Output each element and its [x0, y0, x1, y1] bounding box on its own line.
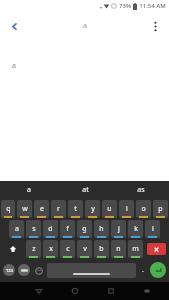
button[interactable]: t: [68, 200, 83, 218]
staticText: 73%: [119, 2, 131, 10]
button[interactable]: l: [145, 220, 160, 238]
staticText: c: [66, 244, 70, 254]
button[interactable]: h: [94, 220, 109, 238]
staticText: a: [15, 224, 19, 234]
staticText: g: [82, 224, 87, 234]
staticText: w: [22, 204, 28, 214]
button[interactable]: n: [111, 240, 126, 258]
staticText: s: [32, 224, 36, 234]
button[interactable]: g: [77, 220, 92, 238]
staticText: z: [32, 244, 36, 254]
button[interactable]: Home: [57, 282, 93, 300]
button[interactable]: Switch keyboard: [129, 282, 165, 300]
button[interactable]: d: [43, 220, 58, 238]
staticText: b: [99, 244, 104, 254]
button[interactable]: o: [136, 200, 151, 218]
button[interactable]: f: [60, 220, 75, 238]
staticText: at: [82, 185, 89, 195]
button[interactable]: Delete: [147, 243, 166, 255]
button[interactable]: e: [34, 200, 49, 218]
staticText: as: [137, 185, 145, 195]
button[interactable]: m: [128, 240, 143, 258]
button[interactable]: i: [119, 200, 134, 218]
staticText: t: [74, 204, 77, 214]
staticText: n: [116, 244, 121, 254]
button[interactable]: r: [51, 200, 66, 218]
button[interactable]: Voice input: [18, 264, 30, 276]
button[interactable]: s: [26, 220, 41, 238]
staticText: a: [12, 61, 16, 71]
staticText: f: [66, 224, 69, 234]
staticText: o: [141, 204, 146, 214]
staticText: 11:54 AM: [139, 2, 166, 10]
button[interactable]: Navigate up: [0, 12, 28, 40]
button[interactable]: c: [60, 240, 75, 258]
staticText: p: [158, 204, 163, 214]
button[interactable]: v: [77, 240, 92, 258]
staticText: h: [99, 224, 104, 234]
button[interactable]: z: [26, 240, 41, 258]
button[interactable]: Enter: [150, 262, 166, 278]
staticText: y: [91, 204, 95, 214]
button[interactable]: p: [153, 200, 168, 218]
staticText: j: [118, 224, 120, 234]
button[interactable]: a: [0, 181, 57, 199]
button[interactable]: Space: [47, 263, 136, 278]
button[interactable]: More options: [141, 12, 169, 40]
staticText: e: [40, 204, 44, 214]
button[interactable]: q: [1, 200, 15, 218]
staticText: i: [126, 204, 128, 214]
staticText: m: [132, 244, 139, 254]
staticText: k: [134, 224, 138, 234]
button[interactable]: k: [128, 220, 143, 238]
button[interactable]: Emoji: [33, 265, 44, 276]
staticText: u: [107, 204, 112, 214]
staticText: l: [152, 224, 154, 234]
staticText: q: [6, 204, 11, 214]
button[interactable]: Shift: [1, 240, 24, 258]
button[interactable]: a: [9, 220, 24, 238]
staticText: .: [142, 265, 144, 275]
staticText: a: [83, 21, 87, 31]
button[interactable]: j: [111, 220, 126, 238]
staticText: a: [27, 185, 31, 195]
button[interactable]: x: [43, 240, 58, 258]
staticText: x: [49, 244, 53, 254]
button[interactable]: as: [113, 181, 169, 199]
button[interactable]: at: [57, 181, 113, 199]
staticText: r: [57, 204, 60, 214]
staticText: d: [48, 224, 53, 234]
button[interactable]: Numbers: [3, 264, 15, 276]
button[interactable]: w: [17, 200, 32, 218]
button[interactable]: Back: [21, 282, 57, 300]
button[interactable]: b: [94, 240, 109, 258]
staticText: 123: [6, 268, 13, 273]
staticText: v: [83, 244, 87, 254]
button[interactable]: Recents: [93, 282, 129, 300]
button[interactable]: y: [85, 200, 100, 218]
button[interactable]: u: [102, 200, 117, 218]
button[interactable]: .: [139, 260, 147, 280]
